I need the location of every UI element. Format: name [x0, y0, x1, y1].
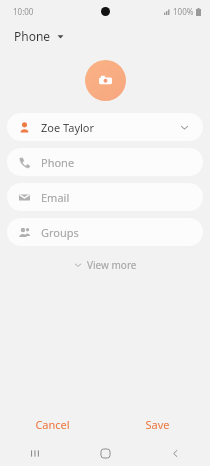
staticText: Email: [41, 190, 191, 205]
staticText: Phone: [41, 155, 191, 170]
staticText: 10:00: [13, 6, 34, 17]
button[interactable]: Groups: [7, 218, 203, 246]
button[interactable]: Recents: [0, 440, 70, 466]
button[interactable]: Back: [140, 440, 210, 466]
staticText: Groups: [41, 225, 191, 240]
button[interactable]: Email: [7, 183, 203, 211]
staticText: Phone: [14, 28, 51, 44]
staticText: View more: [87, 258, 137, 272]
button[interactable]: Home: [70, 440, 140, 466]
button[interactable]: Cancel: [0, 408, 105, 440]
button[interactable]: Phone: [7, 148, 203, 176]
staticText: Zoe Taylor: [41, 120, 180, 135]
button[interactable]: Change profile picture: [85, 60, 126, 101]
button[interactable]: Phone: [12, 25, 66, 47]
staticText: 100%: [173, 6, 194, 17]
staticText: Cancel: [35, 417, 70, 432]
button[interactable]: View more: [66, 254, 145, 276]
staticText: Save: [145, 417, 170, 432]
button[interactable]: Save: [105, 408, 210, 440]
button[interactable]: Zoe Taylor: [7, 113, 203, 141]
